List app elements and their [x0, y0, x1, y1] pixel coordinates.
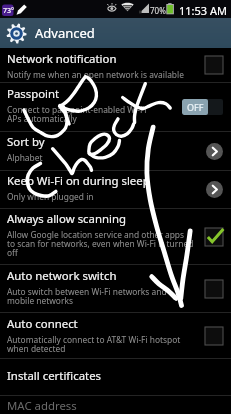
button[interactable]: Auto connect — [0, 313, 231, 358]
staticText: Keep Wi-Fi on during sleep — [7, 173, 150, 189]
staticText: 11:53 AM — [179, 3, 227, 18]
staticText: Connect to passpoint-enabled Wi-Fi APs a… — [7, 104, 147, 124]
button[interactable]: Install certificates — [0, 359, 231, 395]
button[interactable]: Checked — [205, 228, 223, 246]
staticText: Passpoint — [7, 86, 60, 102]
button[interactable]: OFF — [182, 99, 223, 115]
staticText: Advanced — [35, 24, 95, 42]
staticText: Notify me when an open network is availa… — [7, 69, 184, 80]
staticText: Allow Google location service and other … — [7, 229, 194, 258]
staticText: 70% — [150, 5, 166, 16]
staticText: Auto connect — [7, 316, 78, 332]
staticText: Automatically connect to AT&T Wi-Fi hots… — [7, 334, 181, 354]
button[interactable]: Unchecked — [205, 327, 223, 345]
button[interactable]: Open — [206, 143, 223, 160]
staticText: 73° — [3, 6, 15, 16]
button[interactable]: Sort by — [0, 132, 231, 170]
staticText: Alphabet — [7, 152, 43, 163]
staticText: Auto switch between Wi-Fi networks and m… — [7, 286, 167, 306]
button[interactable]: Always allow scanning — [0, 209, 231, 264]
button[interactable]: Unchecked — [205, 280, 223, 298]
button[interactable]: Network notification — [0, 48, 231, 82]
staticText: OFF — [187, 101, 204, 113]
staticText: Install certificates — [7, 368, 102, 384]
staticText: MAC address — [7, 398, 77, 414]
staticText: Sort by — [7, 134, 45, 150]
staticText: Network notification — [7, 51, 117, 67]
button[interactable]: Unchecked — [205, 56, 223, 74]
button[interactable]: MAC address — [0, 396, 231, 414]
button[interactable]: Open — [206, 181, 223, 198]
button[interactable]: Passpoint — [0, 83, 231, 131]
staticText: Auto network switch — [7, 268, 117, 284]
button[interactable]: Auto network switch — [0, 265, 231, 312]
button[interactable]: Keep Wi-Fi on during sleep — [0, 171, 231, 208]
staticText: Always allow scanning — [7, 211, 127, 227]
staticText: Only when plugged in — [7, 191, 94, 202]
